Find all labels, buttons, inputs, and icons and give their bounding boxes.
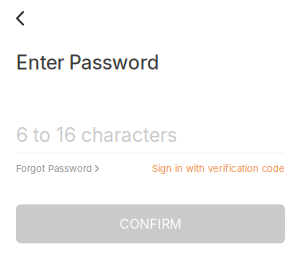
button[interactable]: Back bbox=[0, 0, 40, 37]
staticText: 6 to 16 characters bbox=[16, 123, 177, 147]
navigationBar bbox=[0, 0, 300, 37]
staticText: Sign in with verification code bbox=[152, 163, 285, 174]
button[interactable]: Sign in with verification code bbox=[152, 163, 285, 174]
staticText: CONFIRM bbox=[119, 216, 181, 232]
button[interactable]: CONFIRM bbox=[16, 204, 285, 243]
staticText: Forgot Password bbox=[16, 163, 92, 174]
staticText: Enter Password bbox=[16, 51, 159, 74]
secureTextField[interactable]: 6 to 16 characters bbox=[0, 74, 300, 154]
button[interactable]: Forgot Password bbox=[16, 163, 99, 174]
